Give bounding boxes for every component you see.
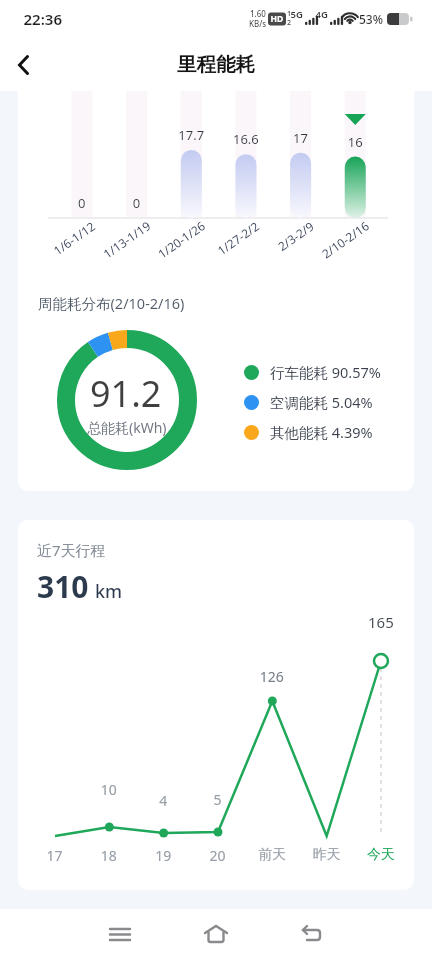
button[interactable] xyxy=(264,909,360,960)
button[interactable] xyxy=(168,909,264,960)
button[interactable] xyxy=(0,41,48,89)
button[interactable] xyxy=(72,909,168,960)
